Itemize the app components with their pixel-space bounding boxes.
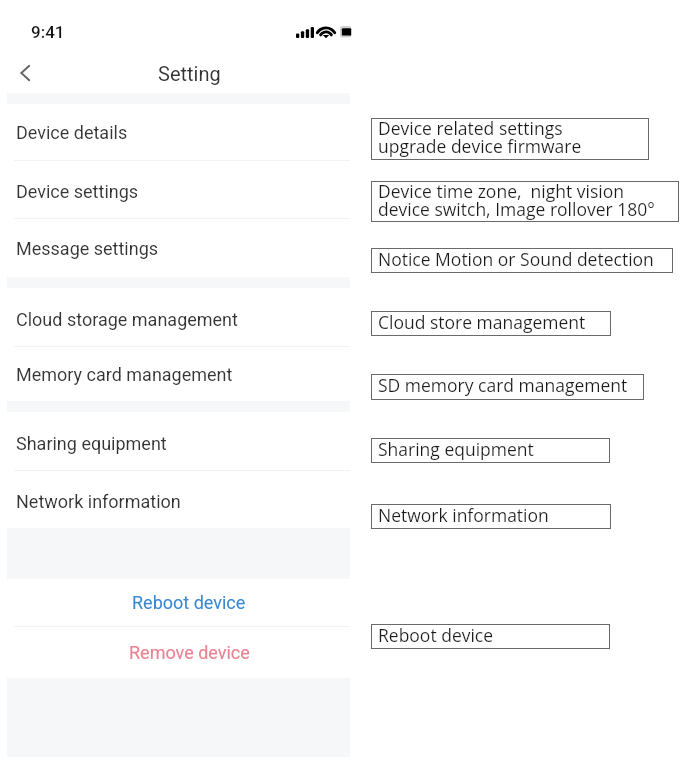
button[interactable]: Reboot device (0, 579, 350, 626)
staticText: Message settings (16, 238, 159, 259)
staticText: Device details (16, 122, 128, 143)
staticText: 9:41 (31, 22, 65, 42)
staticText: Network information (16, 491, 181, 512)
staticText: Reboot device (132, 592, 246, 613)
staticText: Device time zone, night vision device sw… (378, 184, 655, 220)
button[interactable]: Back (5, 52, 45, 92)
staticText: Remove device (129, 642, 250, 663)
button[interactable]: Network information (0, 471, 350, 528)
button[interactable]: Remove device (0, 627, 350, 678)
button[interactable]: Device details (0, 104, 350, 160)
staticText: Reboot device (378, 628, 494, 646)
staticText: Sharing equipment (378, 442, 534, 460)
staticText: Device settings (16, 181, 139, 202)
staticText: Notice Motion or Sound detection (378, 252, 654, 270)
staticText: Sharing equipment (16, 433, 167, 454)
button[interactable]: Memory card management (0, 347, 350, 401)
staticText: Network information (378, 508, 549, 526)
staticText: Device related settings upgrade device f… (378, 121, 582, 157)
button[interactable]: Cloud storage management (0, 288, 350, 346)
staticText: SD memory card management (378, 378, 628, 396)
button[interactable]: Message settings (0, 219, 350, 277)
button[interactable]: Device settings (0, 161, 350, 218)
staticText: Setting (158, 62, 221, 85)
staticText: Cloud storage management (16, 309, 238, 330)
button[interactable]: Sharing equipment (0, 412, 350, 470)
staticText: Memory card management (16, 364, 233, 385)
staticText: Cloud store management (378, 315, 586, 333)
